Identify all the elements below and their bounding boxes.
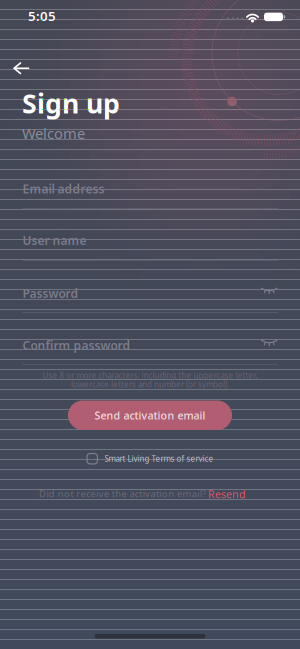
staticText: Welcome — [22, 123, 85, 143]
staticText: User name — [22, 232, 86, 248]
staticText: Send activation email — [94, 408, 205, 422]
button[interactable] — [257, 283, 281, 299]
button[interactable] — [257, 335, 281, 351]
staticText: Email address — [22, 181, 104, 197]
staticText: Resend — [208, 487, 246, 501]
button[interactable]: Send activation email — [68, 400, 232, 430]
staticText: Confirm password — [22, 337, 130, 353]
staticText: Use 8 or more characters, including the … — [42, 370, 257, 381]
button[interactable]: Smart Living Terms of service — [86, 453, 213, 464]
staticText: 5:05 — [28, 7, 56, 25]
staticText: Smart Living Terms of service — [104, 453, 213, 464]
button[interactable]: Resend — [205, 484, 249, 504]
staticText: Did not receive the activation email? — [39, 487, 206, 500]
button[interactable] — [6, 55, 36, 81]
staticText: Password — [22, 285, 78, 301]
staticText: Sign up — [22, 85, 120, 121]
staticText: lowercase letters and number (or symbol)… — [71, 379, 229, 390]
